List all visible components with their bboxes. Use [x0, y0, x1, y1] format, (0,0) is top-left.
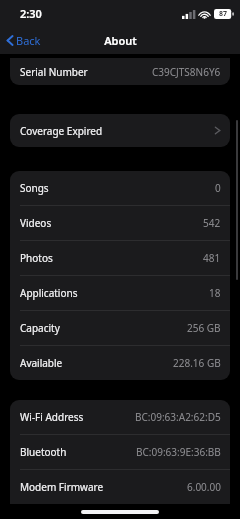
- staticText: 481: [203, 251, 221, 265]
- button[interactable]: Songs: [10, 171, 230, 205]
- button[interactable]: Photos: [10, 241, 230, 275]
- staticText: BC:09:63:A2:62:D5: [135, 410, 221, 424]
- staticText: 87: [219, 9, 228, 19]
- staticText: Serial Number: [20, 65, 88, 79]
- staticText: BC:09:63:9E:36:BB: [136, 445, 221, 459]
- staticText: Videos: [20, 216, 52, 230]
- button[interactable]: Applications: [10, 276, 230, 310]
- staticText: Modem Firmware: [20, 480, 104, 494]
- staticText: 2:30: [20, 6, 42, 21]
- staticText: Bluetooth: [20, 445, 67, 459]
- other: Cellular signal: [182, 10, 195, 19]
- button[interactable]: Wi-Fi Address: [10, 400, 230, 434]
- button[interactable]: Videos: [10, 206, 230, 240]
- staticText: Photos: [20, 251, 53, 265]
- button[interactable]: Modem Firmware: [10, 470, 230, 504]
- staticText: 228.16 GB: [173, 356, 221, 370]
- staticText: Capacity: [20, 321, 60, 335]
- button[interactable]: Capacity: [10, 311, 230, 345]
- staticText: Back: [16, 33, 41, 48]
- button[interactable]: Coverage Expired: [10, 114, 230, 147]
- staticText: 18: [209, 286, 221, 300]
- button[interactable]: Available: [10, 346, 230, 380]
- other: Coverage details: [214, 125, 221, 136]
- button[interactable]: Serial Number: [10, 58, 230, 85]
- staticText: C39CJTS8N6Y6: [152, 65, 221, 79]
- button[interactable]: Back: [0, 29, 49, 52]
- staticText: 6.00.00: [187, 480, 221, 494]
- staticText: 0: [215, 181, 221, 195]
- staticText: About: [104, 33, 137, 48]
- staticText: Songs: [20, 181, 49, 195]
- staticText: 542: [203, 216, 221, 230]
- button[interactable]: Bluetooth: [10, 435, 230, 469]
- staticText: Wi-Fi Address: [20, 410, 84, 424]
- staticText: Coverage Expired: [20, 124, 103, 138]
- staticText: 256 GB: [187, 321, 221, 335]
- other: Battery 87 percent: [214, 9, 234, 19]
- staticText: Available: [20, 356, 63, 370]
- other: Wi-Fi: [199, 10, 210, 19]
- staticText: Applications: [20, 286, 78, 300]
